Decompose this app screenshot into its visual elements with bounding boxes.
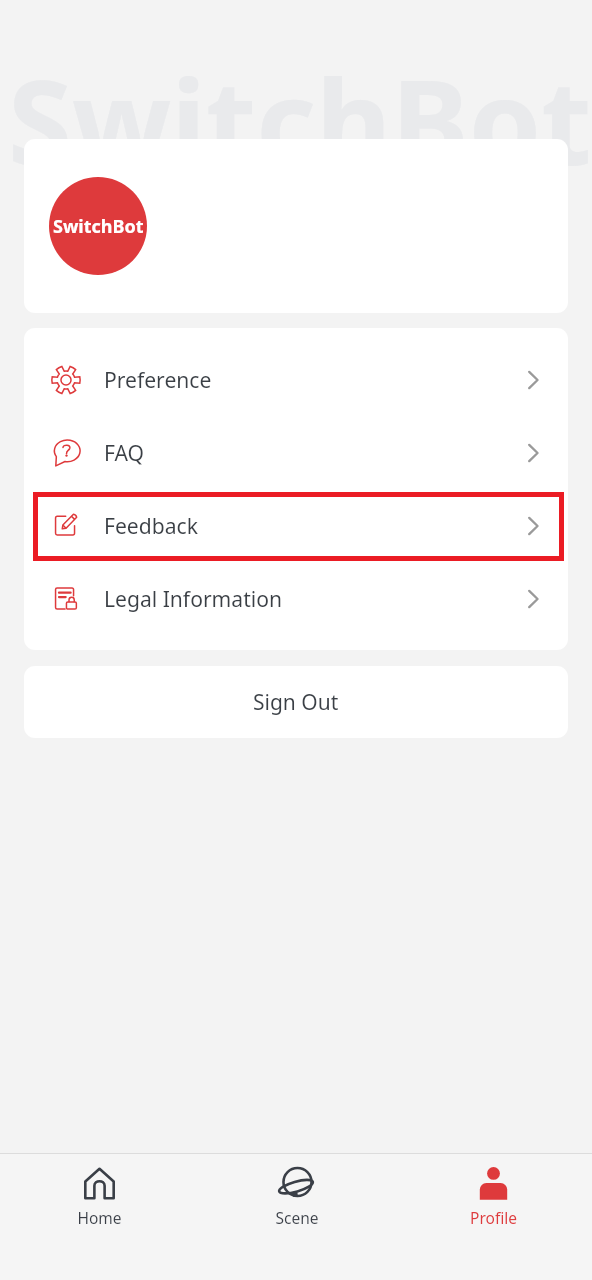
- button[interactable]: Feedback: [24, 489, 568, 562]
- staticText: Feedback: [104, 511, 198, 540]
- staticText: Sign Out: [253, 688, 339, 717]
- button[interactable]: Home: [0, 1154, 198, 1280]
- staticText: Home: [77, 1207, 122, 1228]
- button[interactable]: FAQ: [24, 416, 568, 489]
- staticText: SwitchBot: [8, 41, 592, 199]
- staticText: FAQ: [104, 438, 145, 467]
- button[interactable]: Profile: [395, 1154, 592, 1280]
- button[interactable]: Preference: [24, 343, 568, 416]
- staticText: SwitchBot: [53, 214, 144, 239]
- button[interactable]: Legal Information: [24, 562, 568, 635]
- button[interactable]: Sign Out: [24, 666, 568, 738]
- staticText: Preference: [104, 365, 212, 394]
- button[interactable]: Scene: [198, 1154, 395, 1280]
- button[interactable]: SwitchBot account: [24, 139, 568, 313]
- staticText: Profile: [470, 1207, 517, 1228]
- staticText: Scene: [275, 1207, 319, 1228]
- staticText: Legal Information: [104, 584, 283, 613]
